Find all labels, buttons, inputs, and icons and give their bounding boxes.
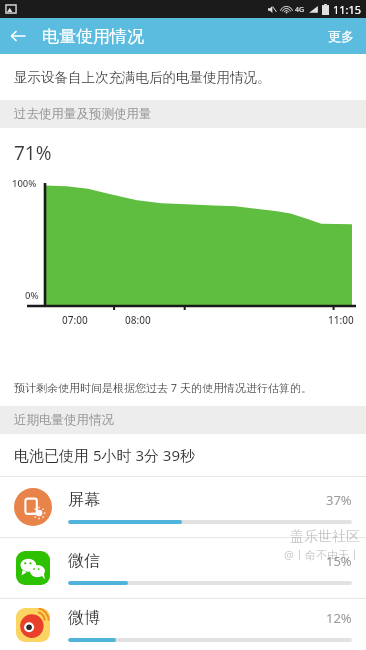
staticText: 11:00: [328, 313, 354, 327]
staticText: 15%: [326, 552, 352, 570]
staticText: 显示设备自上次充满电后的电量使用情况。: [14, 69, 271, 86]
button[interactable]: Back: [0, 18, 36, 54]
staticText: 08:00: [125, 313, 151, 327]
button[interactable]: 屏幕: [0, 476, 366, 537]
staticText: 4G: [295, 5, 305, 15]
staticText: 71%: [14, 140, 52, 166]
staticText: 屏幕: [68, 490, 100, 510]
button[interactable]: 更多: [316, 20, 366, 52]
staticText: 微信: [68, 551, 100, 571]
staticText: 37%: [326, 491, 352, 509]
staticText: 微博: [68, 608, 100, 628]
staticText: 电量使用情况: [42, 26, 144, 47]
staticText: 07:00: [62, 313, 88, 327]
staticText: 100%: [12, 177, 37, 190]
button[interactable]: 微博: [0, 598, 366, 650]
staticText: @丨命不由天丨: [284, 547, 360, 562]
button[interactable]: 微信: [0, 537, 366, 598]
staticText: 11:15: [333, 2, 362, 17]
staticText: 0%: [25, 289, 39, 302]
staticText: 近期电量使用情况: [14, 412, 114, 428]
staticText: 过去使用量及预测使用量: [14, 106, 152, 122]
staticText: 预计剩余使用时间是根据您过去 7 天的使用情况进行估算的。: [14, 380, 313, 395]
staticText: 盖乐世社区: [290, 528, 360, 546]
staticText: 12%: [326, 609, 352, 627]
staticText: 电池已使用 5小时 3分 39秒: [14, 445, 196, 465]
staticText: 更多: [328, 28, 354, 44]
